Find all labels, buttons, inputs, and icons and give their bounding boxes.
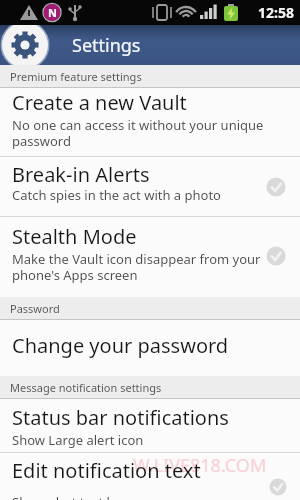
staticText: Stealth Mode <box>12 223 137 250</box>
button[interactable]: Break-in Alerts <box>0 157 300 216</box>
staticText: Catch spies in the act with a photo <box>12 186 221 204</box>
staticText: W.LIVE818.COM <box>133 453 267 478</box>
staticText: Edit notification text <box>12 457 201 484</box>
staticText: 12:58 <box>258 3 294 22</box>
staticText: Premium feature settings <box>10 69 142 84</box>
staticText: Settings <box>72 33 141 58</box>
staticText: N <box>48 5 57 20</box>
button[interactable]: Create a new Vault <box>0 88 300 156</box>
staticText: Create a new Vault <box>12 89 187 116</box>
button[interactable]: W.LIVE818.COM <box>0 453 300 500</box>
button[interactable]: Status bar notifications <box>0 399 300 452</box>
button[interactable]: Change your password <box>0 320 300 376</box>
staticText: Show Large alert icon <box>12 431 144 449</box>
button[interactable]: Settings <box>0 25 300 65</box>
staticText: Show alert text here <box>12 493 135 500</box>
staticText: Status bar notifications <box>12 404 229 431</box>
staticText: Message notification settings <box>10 380 162 395</box>
staticText: Change your password <box>12 332 229 359</box>
staticText: No one can access it without your unique… <box>12 116 264 149</box>
button[interactable]: Stealth Mode <box>0 217 300 297</box>
staticText: Make the Vault icon disappear from your … <box>12 250 261 283</box>
staticText: Break-in Alerts <box>12 161 150 188</box>
staticText: Password <box>10 301 60 316</box>
